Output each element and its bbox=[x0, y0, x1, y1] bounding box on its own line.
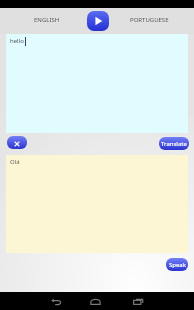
button[interactable]: Speak bbox=[166, 258, 188, 271]
staticText: Olá bbox=[10, 158, 20, 166]
button[interactable]: Back bbox=[46, 292, 66, 310]
button[interactable]: ENGLISH bbox=[5, 8, 89, 34]
button[interactable]: Translate bbox=[159, 137, 189, 150]
button[interactable]: hello bbox=[6, 34, 188, 133]
staticText: PORTUGUESE bbox=[130, 16, 169, 24]
staticText: hello bbox=[10, 37, 24, 45]
staticText: Translate bbox=[161, 140, 187, 148]
button[interactable]: Swap languages bbox=[87, 11, 109, 31]
button[interactable]: PORTUGUESE bbox=[107, 8, 192, 34]
staticText: ENGLISH bbox=[34, 16, 60, 24]
button[interactable]: Recent apps bbox=[128, 292, 148, 310]
button[interactable]: Home bbox=[85, 292, 105, 310]
staticText: Speak bbox=[169, 261, 186, 269]
button[interactable]: Clear text bbox=[7, 136, 27, 149]
